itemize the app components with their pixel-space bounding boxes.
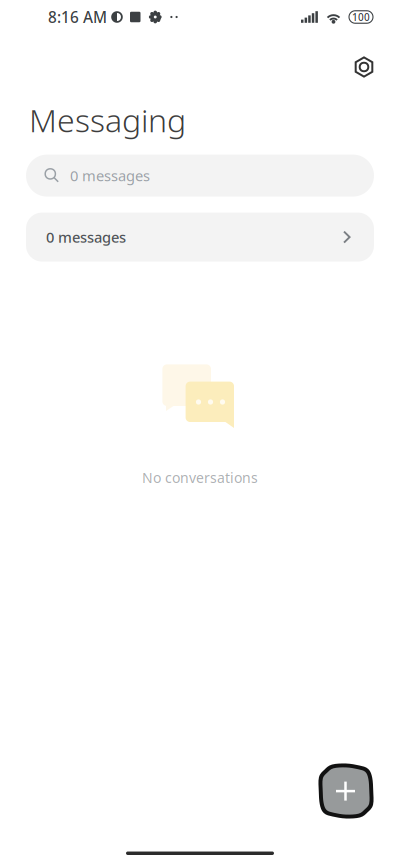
staticText: 0 messages (46, 227, 126, 247)
staticText: 8:16 AM (48, 7, 107, 27)
staticText: No conversations (142, 468, 258, 487)
staticText: 0 messages (70, 166, 150, 186)
button[interactable]: 0 messages (26, 213, 374, 262)
staticText: 100 (352, 10, 370, 24)
button[interactable]: Settings (342, 45, 386, 89)
staticText: Messaging (29, 98, 186, 142)
button[interactable]: New message (317, 763, 375, 819)
button[interactable]: 0 messages (26, 155, 374, 197)
